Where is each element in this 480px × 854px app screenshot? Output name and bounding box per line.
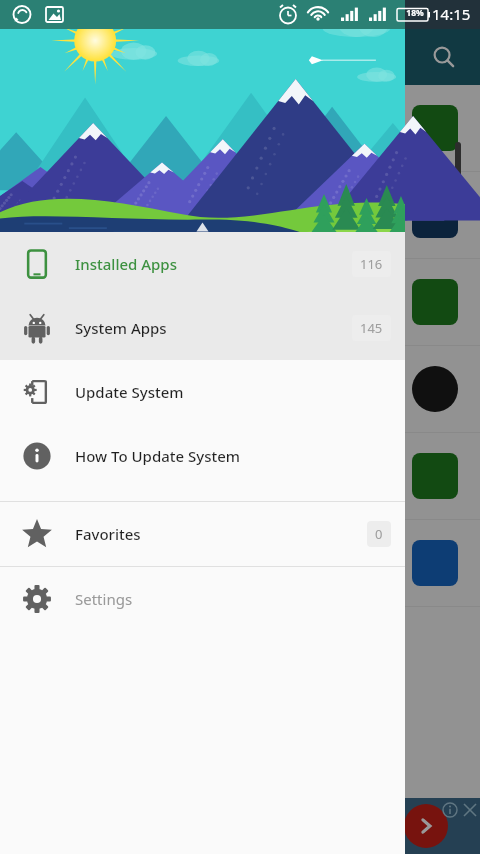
- button[interactable]: [0, 520, 480, 606]
- button[interactable]: [0, 85, 480, 171]
- staticText: 14:15: [432, 4, 471, 24]
- button[interactable]: [0, 172, 480, 258]
- staticText: System Apps: [75, 318, 167, 338]
- button[interactable]: [0, 346, 480, 432]
- button[interactable]: Ad info: [440, 800, 460, 820]
- staticText: 145: [360, 319, 383, 337]
- button[interactable]: System Apps: [0, 296, 405, 360]
- button[interactable]: Search: [422, 35, 466, 79]
- button[interactable]: How To Update System: [0, 424, 405, 488]
- staticText: Update System: [75, 382, 184, 402]
- staticText: How To Update System: [75, 446, 241, 466]
- staticText: Favorites: [75, 524, 141, 544]
- staticText: Settings: [75, 589, 133, 609]
- staticText: 116: [360, 255, 383, 273]
- button[interactable]: Ad action: [404, 804, 448, 848]
- button[interactable]: Close ad: [460, 800, 480, 820]
- button[interactable]: [0, 433, 480, 519]
- staticText: Installed Apps: [75, 254, 177, 274]
- button[interactable]: [0, 259, 480, 345]
- button[interactable]: Installed Apps: [0, 232, 405, 296]
- button[interactable]: Settings: [0, 567, 405, 631]
- staticText: 18%: [400, 7, 430, 19]
- button[interactable]: Update System: [0, 360, 405, 424]
- button[interactable]: Favorites: [0, 502, 405, 566]
- staticText: 0: [375, 525, 383, 543]
